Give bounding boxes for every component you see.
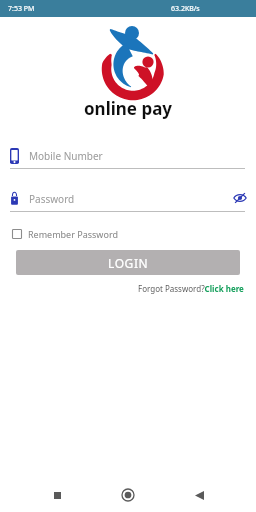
button[interactable]: Home <box>114 481 142 509</box>
button[interactable]: Recents <box>43 481 71 509</box>
button[interactable]: Forgot Password?Click here <box>138 283 244 294</box>
staticText: Password <box>29 192 75 206</box>
staticText: 7:53 PM <box>8 4 35 14</box>
staticText: Remember Password <box>28 228 118 240</box>
button[interactable]: LOGIN <box>16 250 240 275</box>
staticText: Mobile Number <box>29 149 103 163</box>
button[interactable]: Mobile Number <box>10 147 245 169</box>
staticText: LOGIN <box>108 255 149 271</box>
staticText: 63.2KB/s <box>171 4 200 14</box>
button[interactable]: Back <box>185 481 213 509</box>
button[interactable]: Show password <box>231 189 248 206</box>
staticText: online pay <box>84 97 173 120</box>
button[interactable]: Remember Password <box>12 226 118 242</box>
button[interactable]: Password <box>10 190 245 212</box>
